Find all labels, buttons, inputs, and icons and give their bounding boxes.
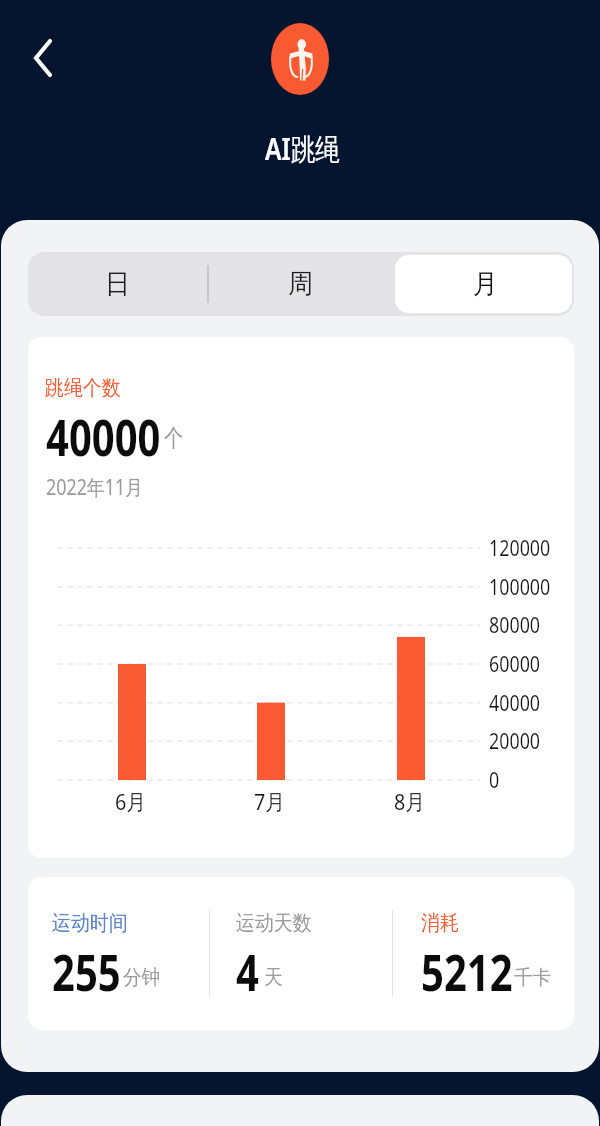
staticText: 日 — [105, 267, 130, 301]
staticText: 8月 — [394, 786, 425, 816]
staticText: 120000 — [489, 534, 551, 563]
button[interactable]: 消耗 — [391, 877, 572, 1030]
staticText: 6月 — [115, 786, 146, 816]
staticText: 运动时间 — [52, 910, 128, 936]
button[interactable]: 月 — [395, 255, 572, 313]
button[interactable]: 日 — [28, 252, 208, 316]
staticText: 5212 — [421, 938, 513, 1006]
button[interactable]: Jump rope activity — [271, 23, 329, 95]
staticText: 80000 — [489, 611, 541, 640]
staticText: 60000 — [489, 650, 541, 679]
staticText: 0 — [489, 766, 500, 795]
staticText: 100000 — [489, 573, 551, 602]
staticText: 个 — [164, 423, 183, 453]
button[interactable]: 运动时间 — [28, 877, 209, 1030]
staticText: 40000 — [489, 689, 541, 718]
staticText: 20000 — [489, 727, 541, 756]
staticText: 千卡 — [514, 965, 551, 990]
staticText: 月 — [473, 267, 498, 301]
staticText: 消耗 — [421, 910, 459, 936]
staticText: 255 — [52, 938, 121, 1006]
staticText: 天 — [264, 965, 283, 990]
button[interactable]: 周 — [209, 252, 391, 316]
staticText: 分钟 — [123, 965, 160, 990]
staticText: 4 — [236, 938, 259, 1006]
button[interactable]: 运动天数 — [209, 877, 390, 1030]
button[interactable]: Back — [16, 32, 68, 84]
staticText: AI跳绳 — [265, 128, 340, 169]
staticText: 运动天数 — [236, 910, 312, 936]
staticText: 40000 — [46, 403, 160, 471]
staticText: 周 — [288, 267, 313, 301]
staticText: 2022年11月 — [46, 473, 144, 502]
staticText: 7月 — [254, 786, 285, 816]
staticText: 跳绳个数 — [45, 375, 121, 401]
